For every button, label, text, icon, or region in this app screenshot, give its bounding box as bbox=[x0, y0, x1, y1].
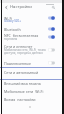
staticText: Wi-Fi bbox=[4, 16, 13, 20]
button[interactable] bbox=[0, 88, 64, 96]
staticText: Подключенные устройства bbox=[4, 61, 46, 65]
staticText: доступа, передача данных bbox=[4, 51, 43, 55]
button[interactable] bbox=[0, 67, 64, 80]
staticText: Galaxy S20+ bbox=[4, 19, 22, 23]
button[interactable]: Switch on bbox=[48, 27, 55, 31]
button[interactable]: Back bbox=[3, 4, 9, 10]
button[interactable] bbox=[0, 32, 64, 41]
staticText: NFC, бесконтактная bbox=[4, 33, 39, 37]
button[interactable] bbox=[0, 80, 64, 88]
staticText: торговля bbox=[4, 37, 18, 41]
button[interactable] bbox=[0, 96, 64, 104]
button[interactable]: Switch off bbox=[48, 48, 55, 52]
staticText: Настройки bbox=[10, 4, 32, 10]
staticText: Время, настройки, поддержка bbox=[4, 97, 54, 101]
button[interactable]: Search bbox=[50, 4, 56, 10]
button[interactable] bbox=[0, 14, 64, 23]
staticText: Сети и интернет bbox=[4, 44, 33, 48]
staticText: Мобильная сеть, Wi-Fi, точка bbox=[4, 48, 46, 52]
button[interactable]: Switch on bbox=[48, 16, 55, 20]
button[interactable] bbox=[0, 43, 64, 56]
staticText: Мобильные сети, Wi-Fi, Bluetooth bbox=[4, 89, 54, 93]
staticText: Bluetooth bbox=[4, 27, 21, 31]
button[interactable] bbox=[0, 58, 64, 66]
staticText: Сети и автономный режим bbox=[4, 70, 46, 74]
button[interactable] bbox=[0, 24, 64, 32]
staticText: Внешний вид экрана bbox=[4, 81, 41, 85]
button[interactable]: Switch off bbox=[48, 61, 55, 65]
button[interactable]: Switch on bbox=[48, 35, 55, 39]
